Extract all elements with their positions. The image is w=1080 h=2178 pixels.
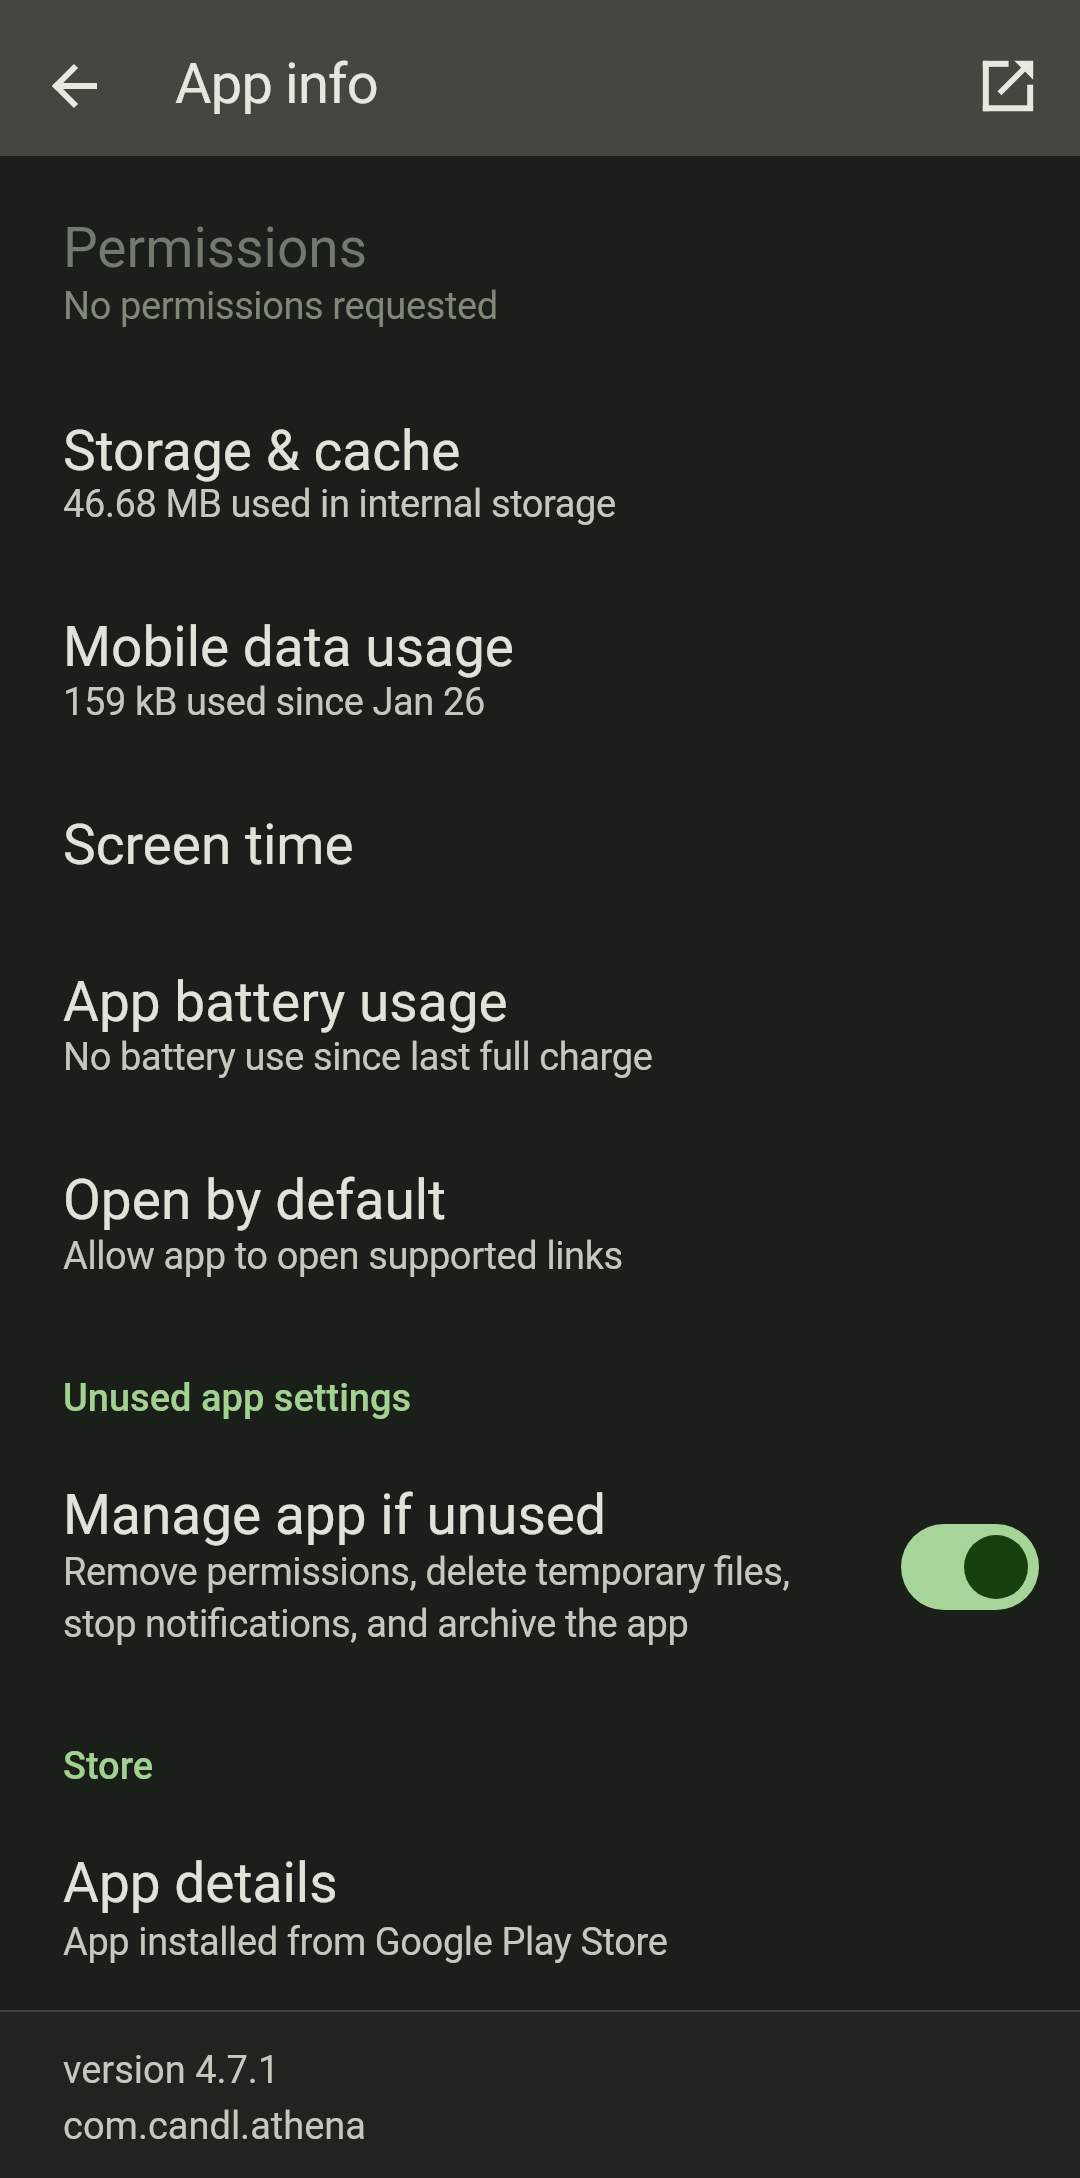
staticText: Allow app to open supported links (63, 1234, 623, 1279)
button[interactable]: Screen time (0, 770, 1080, 910)
staticText: Open by default (63, 1168, 447, 1232)
button[interactable]: Permissions (0, 170, 1080, 360)
staticText: 159 kB used since Jan 26 (63, 680, 485, 725)
staticText: No permissions requested (63, 284, 498, 329)
staticText: No battery use since last full charge (63, 1035, 653, 1080)
button[interactable]: App details (0, 1820, 1080, 2010)
staticText: 46.68 MB used in internal storage (63, 482, 616, 527)
button[interactable] (901, 1524, 1039, 1610)
staticText: Mobile data usage (63, 615, 514, 679)
staticText: Screen time (63, 813, 354, 877)
staticText: App installed from Google Play Store (63, 1920, 668, 1965)
button[interactable] (964, 44, 1048, 128)
staticText: App info (175, 51, 378, 117)
staticText: Remove permissions, delete temporary fil… (63, 1550, 790, 1595)
staticText: com.candl.athena (63, 2104, 366, 2149)
staticText: Permissions (63, 216, 368, 280)
button[interactable]: Manage app if unused (0, 1450, 1080, 1680)
staticText: App details (63, 1851, 338, 1915)
staticText: Manage app if unused (63, 1483, 606, 1547)
button[interactable]: Mobile data usage (0, 578, 1080, 768)
staticText: Storage & cache (63, 419, 461, 483)
staticText: Store (63, 1744, 154, 1789)
staticText: Unused app settings (63, 1376, 412, 1421)
staticText: version 4.7.1 (63, 2048, 280, 2093)
staticText: App battery usage (63, 970, 508, 1034)
button[interactable]: Storage & cache (0, 380, 1080, 570)
button[interactable] (36, 44, 120, 128)
button[interactable]: Open by default (0, 1130, 1080, 1320)
button[interactable]: App battery usage (0, 930, 1080, 1120)
staticText: stop notifications, and archive the app (63, 1602, 689, 1647)
